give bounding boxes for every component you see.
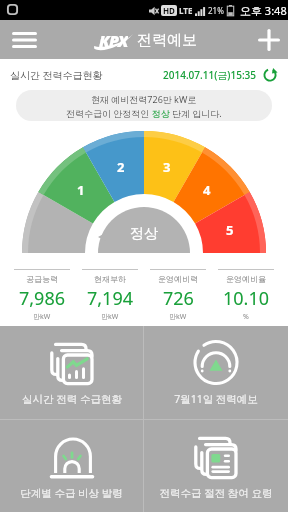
button[interactable]: 실시간 전력 수급현황 <box>0 326 143 419</box>
staticText: 5 <box>226 221 234 239</box>
staticText: 현재부하 <box>94 274 126 284</box>
staticText: 726 <box>163 286 194 311</box>
staticText: 현재 예비전력726만 kW로 <box>91 93 197 105</box>
button[interactable]: Menu <box>0 20 49 59</box>
staticText: 2014.07.11(금)15:35 <box>163 68 257 82</box>
staticText: KPX <box>99 30 128 50</box>
staticText: 1 <box>77 181 85 199</box>
staticText: 단계별 수급 비상 발령 <box>20 486 123 500</box>
staticText: % <box>243 312 249 322</box>
staticText: 3 <box>163 158 171 176</box>
staticText: 공급능력 <box>26 274 58 284</box>
staticText: 4 <box>203 181 211 199</box>
staticText: 10.10 <box>223 286 270 311</box>
staticText: 오후 3:48 <box>240 3 287 18</box>
button[interactable]: 전력수급 절전 참여 요령 <box>144 420 288 512</box>
staticText: 전력수급 절전 참여 요령 <box>159 486 273 500</box>
button[interactable]: 7월11일 전력예보 <box>144 326 288 419</box>
staticText: 전력예보 <box>137 31 197 50</box>
staticText: 운영예비력 <box>158 274 198 284</box>
staticText: 만kW <box>169 312 187 322</box>
staticText: 전력수급이 안정적인 정상 단계 입니다. <box>66 107 222 119</box>
staticText: HD <box>163 5 175 16</box>
staticText: 7월11일 전력예보 <box>174 392 258 406</box>
staticText: 만kW <box>33 312 51 322</box>
button[interactable]: Refresh <box>261 66 279 84</box>
staticText: 실시간 전력 수급현황 <box>22 392 122 406</box>
staticText: 운영예비율 <box>226 274 266 284</box>
button[interactable]: Add <box>250 20 288 59</box>
staticText: 7,986 <box>19 286 66 311</box>
staticText: 7,194 <box>87 286 134 311</box>
staticText: 만kW <box>101 312 119 322</box>
staticText: 21% <box>208 5 224 16</box>
button[interactable]: 단계별 수급 비상 발령 <box>0 420 143 512</box>
staticText: LTE <box>179 5 193 16</box>
staticText: 실시간 전력수급현황 <box>10 68 103 82</box>
staticText: 2 <box>117 158 125 176</box>
staticText: 정상 <box>130 225 158 243</box>
